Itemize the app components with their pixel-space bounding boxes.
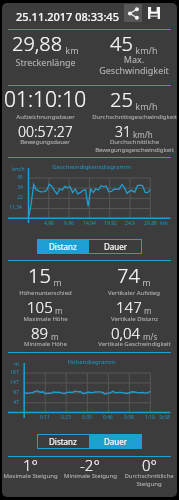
staticText: 0:35: [82, 414, 92, 421]
staticText: 105: [27, 297, 53, 317]
staticText: Bewegungsdauer: [20, 138, 70, 146]
staticText: 147: [116, 297, 142, 317]
staticText: 25: [110, 86, 133, 113]
button[interactable]: Share: [124, 4, 142, 22]
staticText: Distanz: [49, 436, 77, 447]
staticText: Vertikaler Aufstieg: [108, 289, 160, 297]
staticText: 25.11.2017 08:33:45: [16, 9, 119, 24]
button[interactable]: Distanz: [37, 239, 89, 254]
staticText: 1:10: [145, 414, 155, 421]
staticText: km/h: [133, 44, 158, 56]
staticText: Maximale Höhe: [23, 315, 68, 323]
staticText: 0°: [142, 455, 157, 475]
staticText: 0:46: [103, 414, 113, 421]
staticText: 89: [31, 323, 49, 343]
staticText: Max. Geschwindigkeit: [99, 53, 169, 76]
staticText: 4,98: [44, 220, 54, 227]
staticText: km/h: [133, 100, 158, 112]
staticText: Minimale Höhe: [24, 340, 67, 348]
staticText: Durchschnittsgeschwindigkeit: [92, 113, 177, 121]
button[interactable]: Distanz: [37, 434, 89, 449]
staticText: 147: [10, 379, 19, 386]
staticText: 0:58: [124, 414, 134, 421]
staticText: 01:10:10: [4, 85, 87, 114]
staticText: 14,94: [83, 220, 96, 227]
staticText: 00:57:27: [18, 122, 73, 141]
staticText: Geschwindigkeitsdiagramm: [52, 163, 131, 171]
staticText: m: [140, 276, 151, 288]
staticText: St:M: [159, 414, 170, 421]
button[interactable]: Save: [145, 4, 163, 22]
staticText: 0:23: [61, 414, 71, 421]
staticText: 15: [28, 262, 51, 289]
staticText: Distanz: [49, 241, 77, 252]
staticText: 187: [10, 369, 19, 376]
staticText: Dauer: [104, 436, 128, 447]
staticText: 19,92: [104, 220, 117, 227]
staticText: Vertikale Geschwindigkeit: [98, 340, 171, 348]
staticText: m/s: [141, 331, 158, 342]
staticText: 0:11: [40, 414, 50, 421]
staticText: 47: [13, 399, 19, 406]
staticText: Streckenlänge: [15, 56, 76, 68]
staticText: Durchschnittliche Steigung: [124, 472, 174, 488]
staticText: 34: [17, 184, 23, 191]
staticText: -2°: [80, 455, 100, 475]
button[interactable]: Dauer: [89, 239, 142, 254]
staticText: Durchschnittliche Bewegungsgeschwindigke…: [95, 138, 174, 154]
staticText: km/h: [12, 166, 25, 173]
staticText: 45: [17, 174, 23, 181]
staticText: 24,9: [125, 220, 135, 227]
staticText: Vertikale Distanz: [111, 315, 158, 323]
staticText: 45: [110, 30, 133, 57]
staticText: Höhendiagramm: [67, 358, 116, 366]
staticText: 11,34: [9, 204, 22, 211]
staticText: 29,88: [144, 220, 157, 227]
staticText: m: [142, 305, 152, 316]
staticText: 0,04: [111, 323, 141, 343]
staticText: 31: [115, 122, 131, 141]
button[interactable]: Dauer: [89, 434, 142, 449]
staticText: 22: [17, 194, 23, 201]
staticText: Höhenunterschied: [19, 289, 72, 297]
staticText: km/h: [131, 129, 153, 140]
staticText: km: [160, 220, 168, 227]
staticText: m: [51, 276, 62, 288]
staticText: Maximale Steigung: [3, 472, 58, 480]
staticText: km: [63, 44, 79, 56]
staticText: 9,96: [64, 220, 74, 227]
staticText: 97: [13, 389, 19, 396]
staticText: 74: [117, 262, 140, 289]
staticText: 29,88: [12, 30, 63, 57]
staticText: m: [49, 331, 59, 342]
staticText: m: [53, 305, 63, 316]
staticText: m: [14, 361, 19, 368]
staticText: 1°: [23, 455, 38, 475]
staticText: Aufzeichnungsdauer: [16, 113, 75, 121]
staticText: Dauer: [104, 241, 128, 252]
staticText: Minimale Steigung: [64, 472, 117, 480]
